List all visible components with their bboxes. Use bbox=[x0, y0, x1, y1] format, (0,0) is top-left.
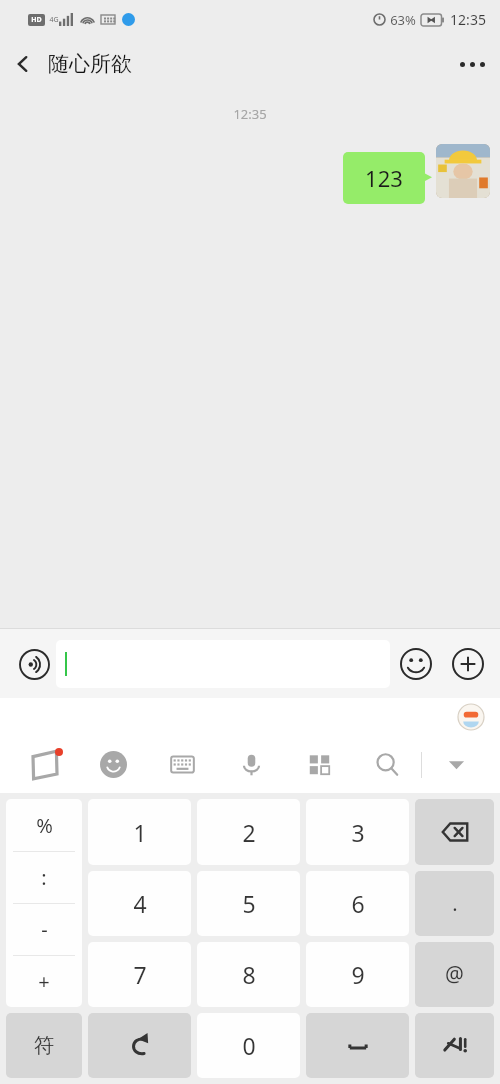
staticText: 1 bbox=[133, 817, 147, 848]
button[interactable]: 4 bbox=[88, 871, 191, 936]
button[interactable]: 1 bbox=[88, 799, 191, 865]
staticText: @ bbox=[445, 960, 464, 989]
button[interactable]: Space bbox=[306, 1013, 409, 1078]
button[interactable]: Back bbox=[0, 41, 46, 87]
button[interactable]: % bbox=[6, 799, 82, 851]
button[interactable]: Undo bbox=[88, 1013, 191, 1078]
button[interactable]: + bbox=[6, 956, 82, 1007]
button[interactable]: Enter bbox=[415, 1013, 494, 1078]
button[interactable]: Search bbox=[353, 736, 421, 793]
button[interactable]: Sogou input bbox=[10, 736, 79, 793]
button[interactable]: Voice input bbox=[12, 642, 56, 686]
staticText: 4 bbox=[133, 888, 147, 919]
staticText: - bbox=[41, 916, 48, 943]
button[interactable]: - bbox=[6, 904, 82, 955]
button[interactable]: 3 bbox=[306, 799, 409, 865]
staticText: 2 bbox=[242, 817, 256, 848]
button[interactable] bbox=[56, 640, 390, 688]
button[interactable]: 6 bbox=[306, 871, 409, 936]
button[interactable]: Keyboard bbox=[148, 736, 217, 793]
staticText: 12:35 bbox=[233, 105, 267, 123]
staticText: 63% bbox=[390, 11, 416, 29]
staticText: 0 bbox=[242, 1030, 256, 1061]
staticText: 9 bbox=[351, 959, 365, 990]
staticText: . bbox=[452, 890, 458, 917]
button[interactable]: More functions bbox=[442, 638, 494, 690]
button[interactable]: 5 bbox=[197, 871, 300, 936]
staticText: 5 bbox=[242, 888, 256, 919]
button[interactable]: 8 bbox=[197, 942, 300, 1007]
button[interactable]: 9 bbox=[306, 942, 409, 1007]
staticText: 123 bbox=[365, 163, 403, 193]
staticText: 随心所欲 bbox=[48, 51, 132, 77]
staticText: % bbox=[36, 812, 53, 839]
staticText: 4G bbox=[49, 15, 59, 25]
button[interactable]: 7 bbox=[88, 942, 191, 1007]
button[interactable]: More options bbox=[444, 38, 500, 90]
button[interactable]: Sticker bbox=[456, 702, 486, 732]
staticText: 12:35 bbox=[450, 10, 486, 29]
staticText: + bbox=[38, 968, 50, 995]
button[interactable]: : bbox=[6, 852, 82, 903]
button[interactable]: Panels bbox=[285, 736, 353, 793]
button[interactable]: 123 bbox=[343, 152, 425, 204]
staticText: HD bbox=[31, 15, 42, 25]
button[interactable]: 2 bbox=[197, 799, 300, 865]
button[interactable]: Backspace bbox=[415, 799, 494, 865]
button[interactable]: Avatar bbox=[436, 144, 490, 198]
button[interactable]: Hide keyboard bbox=[422, 736, 490, 793]
button[interactable]: 符 bbox=[6, 1013, 82, 1078]
staticText: 7 bbox=[133, 959, 147, 990]
staticText: 6 bbox=[351, 888, 365, 919]
button[interactable]: @ bbox=[415, 942, 494, 1007]
button[interactable]: . bbox=[415, 871, 494, 936]
staticText: 8 bbox=[242, 959, 256, 990]
staticText: : bbox=[41, 864, 47, 891]
button[interactable]: 0 bbox=[197, 1013, 300, 1078]
button[interactable]: Emoji panel bbox=[79, 736, 148, 793]
button[interactable]: Voice bbox=[217, 736, 285, 793]
staticText: 符 bbox=[34, 1033, 54, 1058]
button[interactable]: Emoji bbox=[390, 638, 442, 690]
staticText: 3 bbox=[351, 817, 365, 848]
